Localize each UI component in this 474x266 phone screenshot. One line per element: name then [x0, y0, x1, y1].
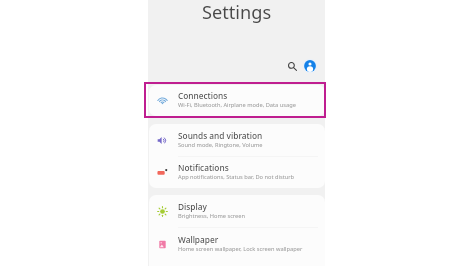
staticText: Display — [178, 201, 207, 212]
button[interactable]: Display — [149, 195, 325, 227]
staticText: Wi-Fi, Bluetooth, Airplane mode, Data us… — [178, 101, 296, 109]
button[interactable]: Search — [283, 57, 301, 75]
staticText: Notifications — [178, 162, 229, 173]
staticText: Connections — [178, 90, 228, 101]
button[interactable]: Sounds and vibration — [149, 124, 325, 156]
button[interactable]: Notifications — [149, 157, 325, 188]
staticText: Brightness, Home screen — [178, 212, 246, 220]
staticText: Sounds and vibration — [178, 130, 263, 141]
staticText: Home screen wallpaper, Lock screen wallp… — [178, 245, 303, 253]
staticText: App notifications, Status bar, Do not di… — [178, 173, 295, 181]
staticText: Sound mode, Ringtone, Volume — [178, 141, 263, 149]
button[interactable]: Connections — [149, 85, 325, 116]
button[interactable]: Wallpaper — [149, 228, 325, 260]
staticText: Wallpaper — [178, 234, 219, 245]
staticText: Settings — [202, 0, 272, 24]
button[interactable]: Account — [302, 58, 318, 74]
